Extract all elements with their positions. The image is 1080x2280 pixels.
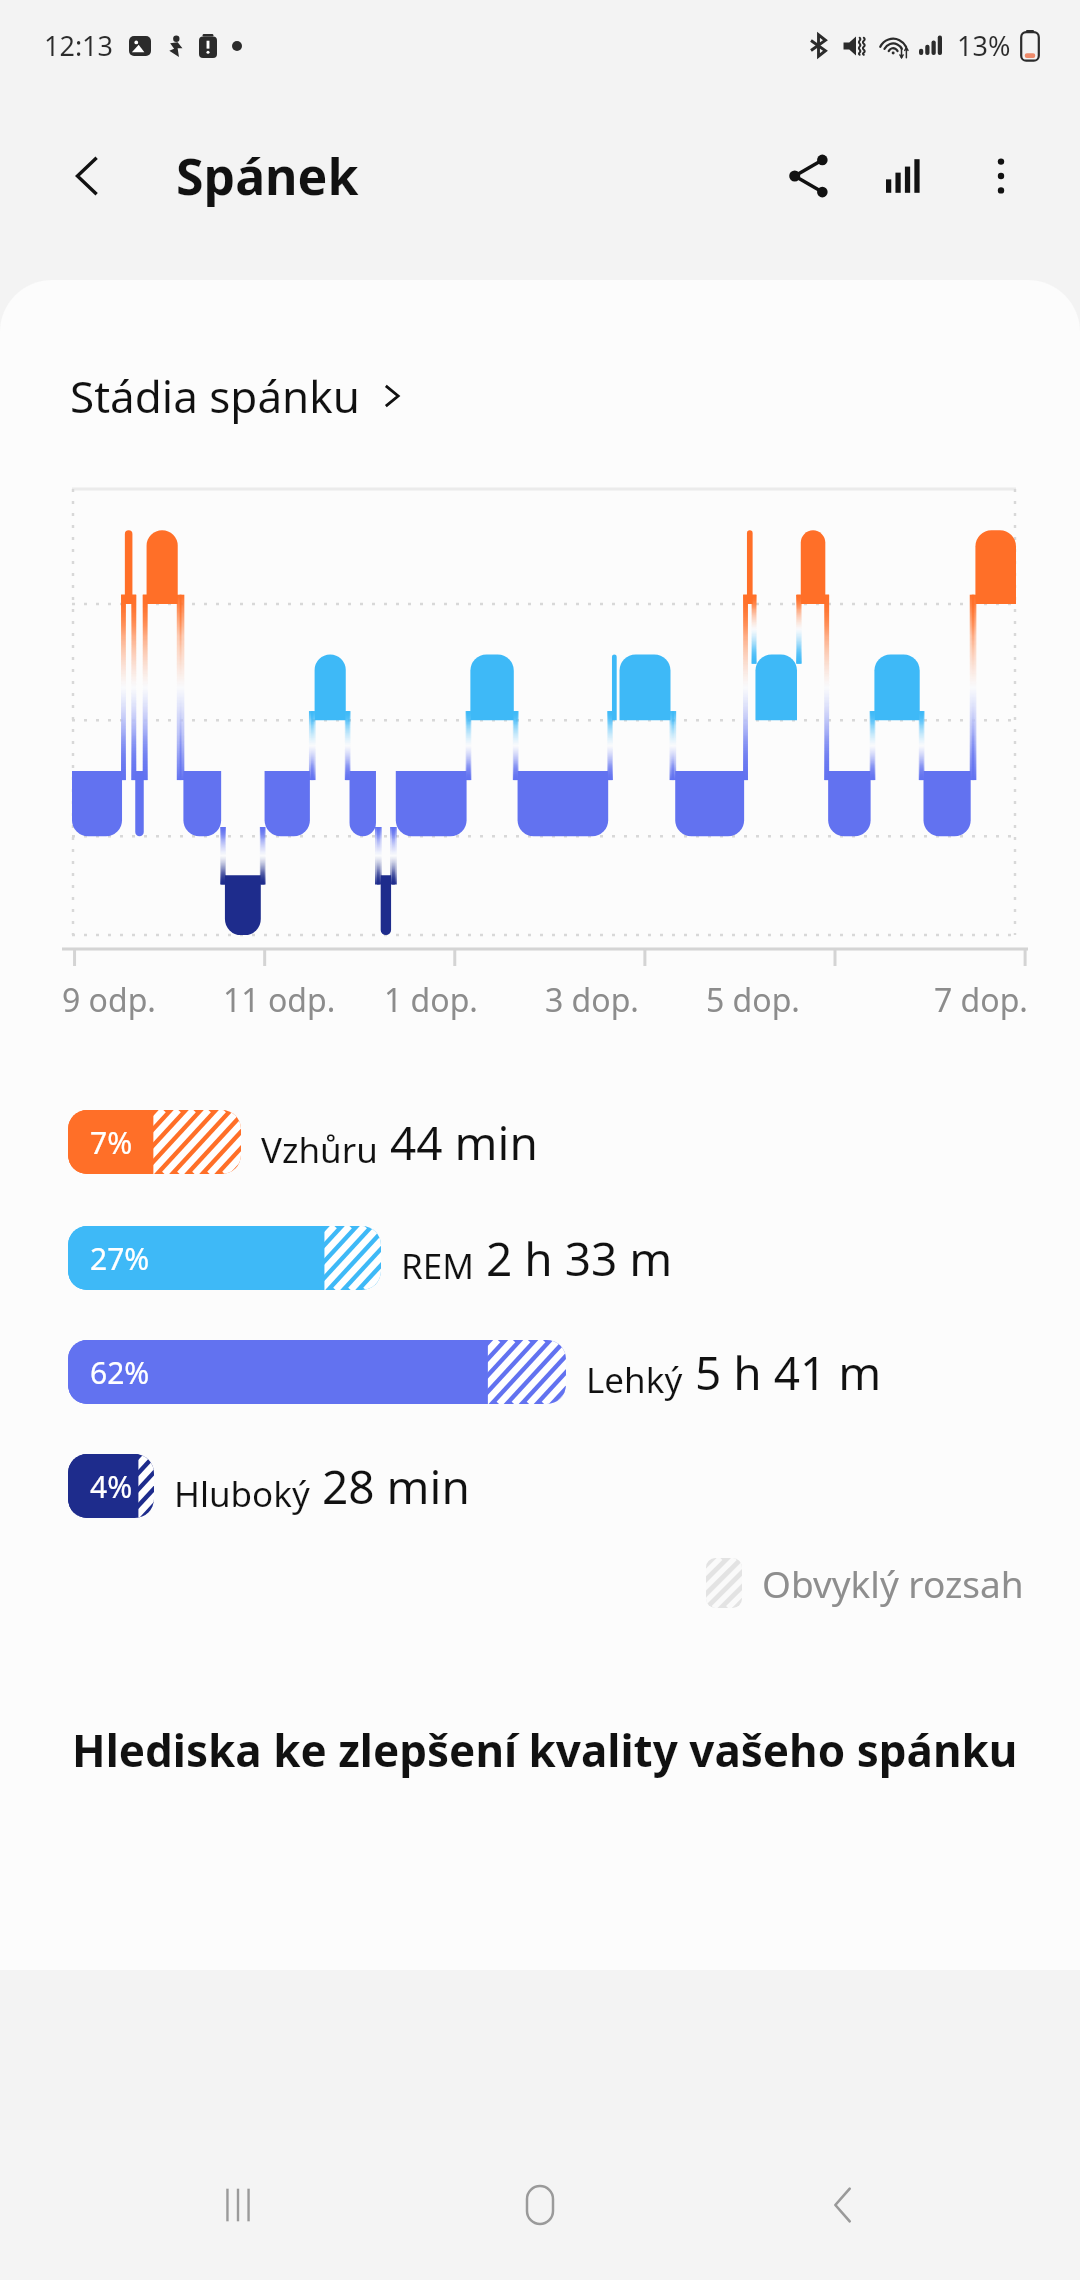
staticText: Lehký xyxy=(586,1356,683,1404)
button[interactable]: Share xyxy=(766,133,852,219)
button[interactable]: 7% xyxy=(68,1110,1044,1174)
staticText: 5 h 41 m xyxy=(695,1341,882,1404)
staticText: 12:13 xyxy=(44,27,114,64)
button[interactable]: Statistics xyxy=(864,133,950,219)
staticText: 9 odp. xyxy=(62,978,156,1022)
button[interactable]: More options xyxy=(958,133,1044,219)
staticText: 13% xyxy=(957,27,1011,64)
staticText: REM xyxy=(401,1242,474,1290)
staticText: 4% xyxy=(90,1466,133,1507)
button[interactable]: Home xyxy=(475,2140,605,2270)
staticText: 7 dop. xyxy=(934,978,1028,1022)
button[interactable]: Back xyxy=(778,2140,908,2270)
staticText: Hlediska ke zlepšení kvality vašeho spán… xyxy=(72,1720,1018,1780)
staticText: 1 dop. xyxy=(384,978,478,1022)
staticText: 28 min xyxy=(322,1455,470,1518)
staticText: 62% xyxy=(90,1352,150,1393)
staticText: 5 dop. xyxy=(706,978,800,1022)
staticText: Stádia spánku xyxy=(70,366,360,426)
staticText: 27% xyxy=(90,1238,150,1279)
button[interactable]: 62% xyxy=(68,1340,1044,1404)
staticText: Hluboký xyxy=(174,1470,310,1518)
staticText: 44 min xyxy=(390,1111,538,1174)
staticText: 7% xyxy=(90,1122,133,1163)
staticText: Spánek xyxy=(176,142,359,210)
button[interactable]: 27% xyxy=(68,1226,1044,1290)
staticText: Obvyklý rozsah xyxy=(762,1558,1024,1608)
button[interactable]: Stádia spánku xyxy=(70,366,406,426)
staticText: 3 dop. xyxy=(545,978,639,1022)
button[interactable]: 4% xyxy=(68,1454,1044,1518)
staticText: Vzhůru xyxy=(261,1126,378,1174)
staticText: 2 h 33 m xyxy=(486,1227,673,1290)
staticText: 11 odp. xyxy=(223,978,336,1022)
button[interactable]: Recents xyxy=(173,2140,303,2270)
button[interactable]: Back xyxy=(48,136,128,216)
